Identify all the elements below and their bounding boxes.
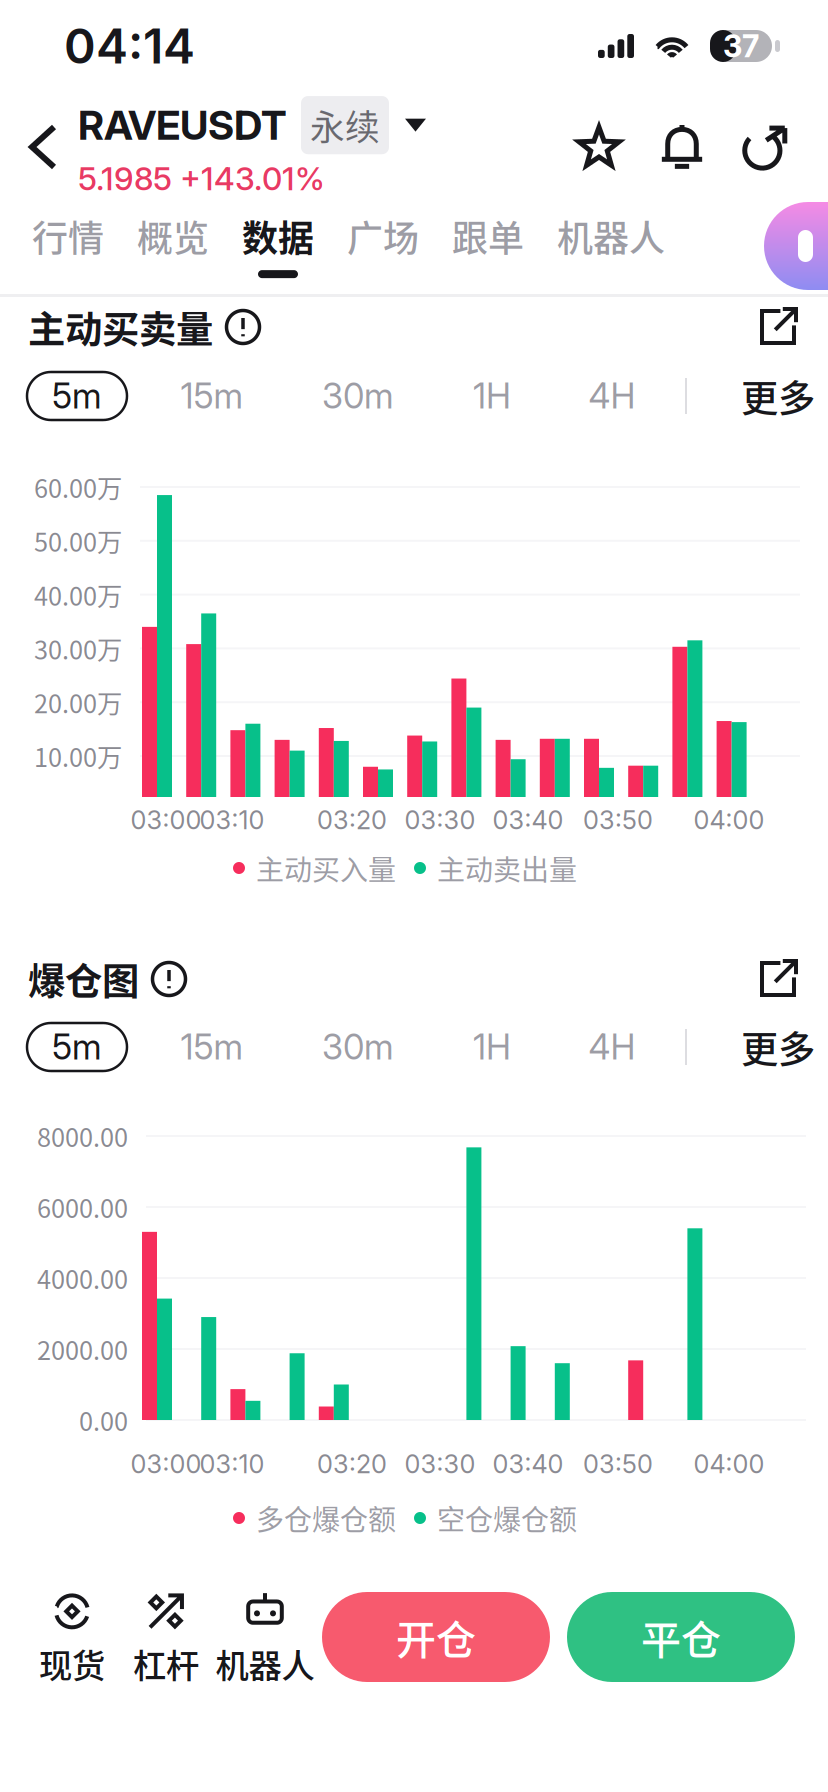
button[interactable]: 1H <box>437 1023 547 1071</box>
button[interactable]: 更多 <box>727 359 828 433</box>
staticText: 03:40 <box>492 1449 563 1479</box>
staticText: 跟单 <box>452 210 524 262</box>
button[interactable]: 广场 <box>347 210 419 278</box>
button[interactable]: 跟单 <box>452 210 524 278</box>
staticText: 空仓爆仓额 <box>437 1498 577 1538</box>
staticText: 主动买卖量 <box>28 300 213 354</box>
staticText: 30.00万 <box>34 630 122 667</box>
staticText: 03:40 <box>492 805 563 835</box>
button[interactable]: 杠杆 <box>111 1592 221 1688</box>
staticText: 1H <box>473 1026 511 1068</box>
button[interactable]: 更多 <box>727 1010 828 1084</box>
staticText: 15m <box>180 375 243 417</box>
staticText: 03:10 <box>199 805 264 835</box>
button[interactable]: 概览 <box>137 210 209 278</box>
staticText: 主动买入量 <box>256 848 396 888</box>
button[interactable]: 4H <box>557 1023 667 1071</box>
staticText: 4H <box>588 375 635 417</box>
staticText: 8000.00 <box>37 1118 128 1154</box>
staticText: 更多 <box>741 369 815 423</box>
button[interactable]: 平仓 <box>567 1592 795 1682</box>
staticText: 多仓爆仓额 <box>256 1498 396 1538</box>
staticText: 永续 <box>310 100 380 150</box>
button[interactable]: 30m <box>303 1023 413 1071</box>
button[interactable]: 行情 <box>32 210 104 278</box>
staticText: 15m <box>180 1026 243 1068</box>
button[interactable]: Favorite <box>562 106 636 188</box>
staticText: 开仓 <box>396 1608 476 1666</box>
staticText: 50.00万 <box>34 522 122 559</box>
button[interactable]: 5m <box>27 1023 127 1071</box>
staticText: 30m <box>322 1026 394 1068</box>
staticText: 10.00万 <box>34 738 122 774</box>
button[interactable]: Share <box>728 105 802 189</box>
button[interactable]: 数据 <box>242 210 314 278</box>
staticText: 03:50 <box>583 1449 653 1479</box>
staticText: 平仓 <box>641 1608 721 1666</box>
button[interactable]: 机器人 <box>210 1592 320 1688</box>
staticText: 03:00 <box>130 805 201 835</box>
button[interactable]: 30m <box>303 372 413 420</box>
staticText: 03:20 <box>317 1449 387 1479</box>
staticText: 6000.00 <box>37 1189 128 1225</box>
button[interactable]: Fullscreen chart <box>750 951 806 1007</box>
button[interactable]: 4H <box>557 372 667 420</box>
button[interactable]: Back <box>0 105 78 189</box>
staticText: 04:00 <box>693 1449 764 1479</box>
button[interactable]: 开仓 <box>322 1592 550 1682</box>
staticText: 机器人 <box>215 1639 314 1688</box>
staticText: 04:14 <box>64 17 195 75</box>
staticText: 0.00 <box>79 1402 128 1438</box>
button[interactable]: 15m <box>157 372 267 420</box>
staticText: RAVEUSDT <box>78 101 287 149</box>
staticText: 37 <box>723 27 759 64</box>
staticText: 概览 <box>137 210 209 262</box>
button[interactable]: 15m <box>157 1023 267 1071</box>
staticText: 03:30 <box>404 1449 475 1479</box>
staticText: 03:50 <box>583 805 653 835</box>
button[interactable]: 现货 <box>17 1592 127 1688</box>
staticText: 杠杆 <box>133 1639 199 1688</box>
staticText: 数据 <box>242 210 314 262</box>
staticText: 03:10 <box>199 1449 264 1479</box>
staticText: 30m <box>322 375 394 417</box>
staticText: 机器人 <box>557 210 665 262</box>
staticText: 爆仓图 <box>28 952 139 1006</box>
staticText: 更多 <box>741 1020 815 1074</box>
button[interactable]: 1H <box>437 372 547 420</box>
button[interactable]: Price alert <box>646 105 718 189</box>
staticText: 5.1985 +143.01% <box>78 159 325 198</box>
staticText: 广场 <box>347 210 419 262</box>
button[interactable]: 机器人 <box>557 210 665 278</box>
staticText: 60.00万 <box>34 469 122 505</box>
staticText: 40.00万 <box>34 576 122 613</box>
staticText: 2000.00 <box>37 1331 128 1367</box>
staticText: 20.00万 <box>34 684 122 721</box>
staticText: 现货 <box>39 1639 105 1688</box>
button[interactable]: Fullscreen chart <box>750 299 806 355</box>
staticText: 5m <box>52 1026 102 1068</box>
staticText: 主动卖出量 <box>437 848 577 888</box>
staticText: 1H <box>473 375 511 417</box>
staticText: 04:00 <box>693 805 764 835</box>
staticText: 4000.00 <box>37 1260 128 1296</box>
staticText: 行情 <box>32 210 104 262</box>
button[interactable]: 5m <box>27 372 127 420</box>
staticText: 03:20 <box>317 805 387 835</box>
staticText: 5m <box>52 375 102 417</box>
staticText: 03:00 <box>130 1449 201 1479</box>
staticText: 03:30 <box>404 805 475 835</box>
staticText: 4H <box>588 1026 635 1068</box>
